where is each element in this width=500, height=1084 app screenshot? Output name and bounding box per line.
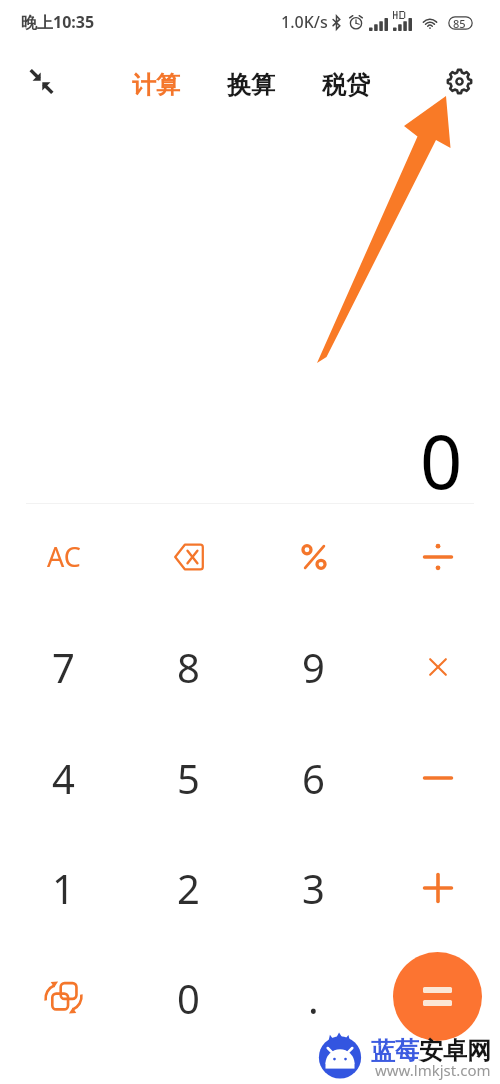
staticText: 5: [177, 751, 200, 805]
staticText: 安卓网: [419, 1036, 491, 1066]
staticText: .: [308, 971, 319, 1025]
button[interactable]: Collapse: [28, 68, 55, 95]
button[interactable]: 6: [251, 722, 376, 833]
button[interactable]: 税贷: [321, 68, 371, 102]
staticText: 蓝莓: [371, 1036, 419, 1066]
button[interactable]: Add: [375, 832, 500, 943]
staticText: 税贷: [322, 70, 370, 100]
staticText: 0: [420, 410, 463, 511]
staticText: 6: [302, 751, 325, 805]
button[interactable]: .: [251, 942, 376, 1053]
staticText: 9: [302, 640, 325, 694]
staticText: AC: [47, 538, 81, 575]
button[interactable]: 1: [1, 832, 126, 943]
button[interactable]: 5: [126, 722, 251, 833]
button[interactable]: 7: [1, 611, 126, 722]
staticText: 1.0K/s: [281, 11, 328, 33]
staticText: www.lmkjst.com: [375, 1060, 491, 1080]
button[interactable]: 0: [126, 942, 251, 1053]
button[interactable]: 计算: [131, 68, 181, 102]
staticText: 4: [52, 751, 75, 805]
button[interactable]: 换算: [226, 68, 276, 102]
button[interactable]: Percent: [251, 518, 376, 595]
staticText: 换算: [227, 70, 275, 100]
button[interactable]: 9: [251, 611, 376, 722]
staticText: 1: [52, 861, 75, 915]
staticText: 7: [52, 640, 75, 694]
button[interactable]: Unit conversion: [1, 942, 126, 1053]
staticText: 晚上10:35: [21, 11, 95, 33]
button[interactable]: Settings: [446, 68, 473, 95]
button[interactable]: Subtract: [375, 722, 500, 833]
button[interactable]: 8: [126, 611, 251, 722]
button[interactable]: AC: [1, 518, 126, 595]
button[interactable]: Multiply: [375, 611, 500, 722]
staticText: 2: [177, 861, 200, 915]
staticText: 8: [177, 640, 200, 694]
staticText: 85: [453, 16, 466, 31]
button[interactable]: 3: [251, 832, 376, 943]
staticText: 3: [302, 861, 325, 915]
staticText: 0: [177, 971, 200, 1025]
button[interactable]: 2: [126, 832, 251, 943]
button[interactable]: Equals: [393, 952, 482, 1041]
button[interactable]: Backspace: [126, 518, 251, 595]
button[interactable]: 4: [1, 722, 126, 833]
button[interactable]: Divide: [375, 518, 500, 595]
staticText: 计算: [132, 70, 180, 100]
